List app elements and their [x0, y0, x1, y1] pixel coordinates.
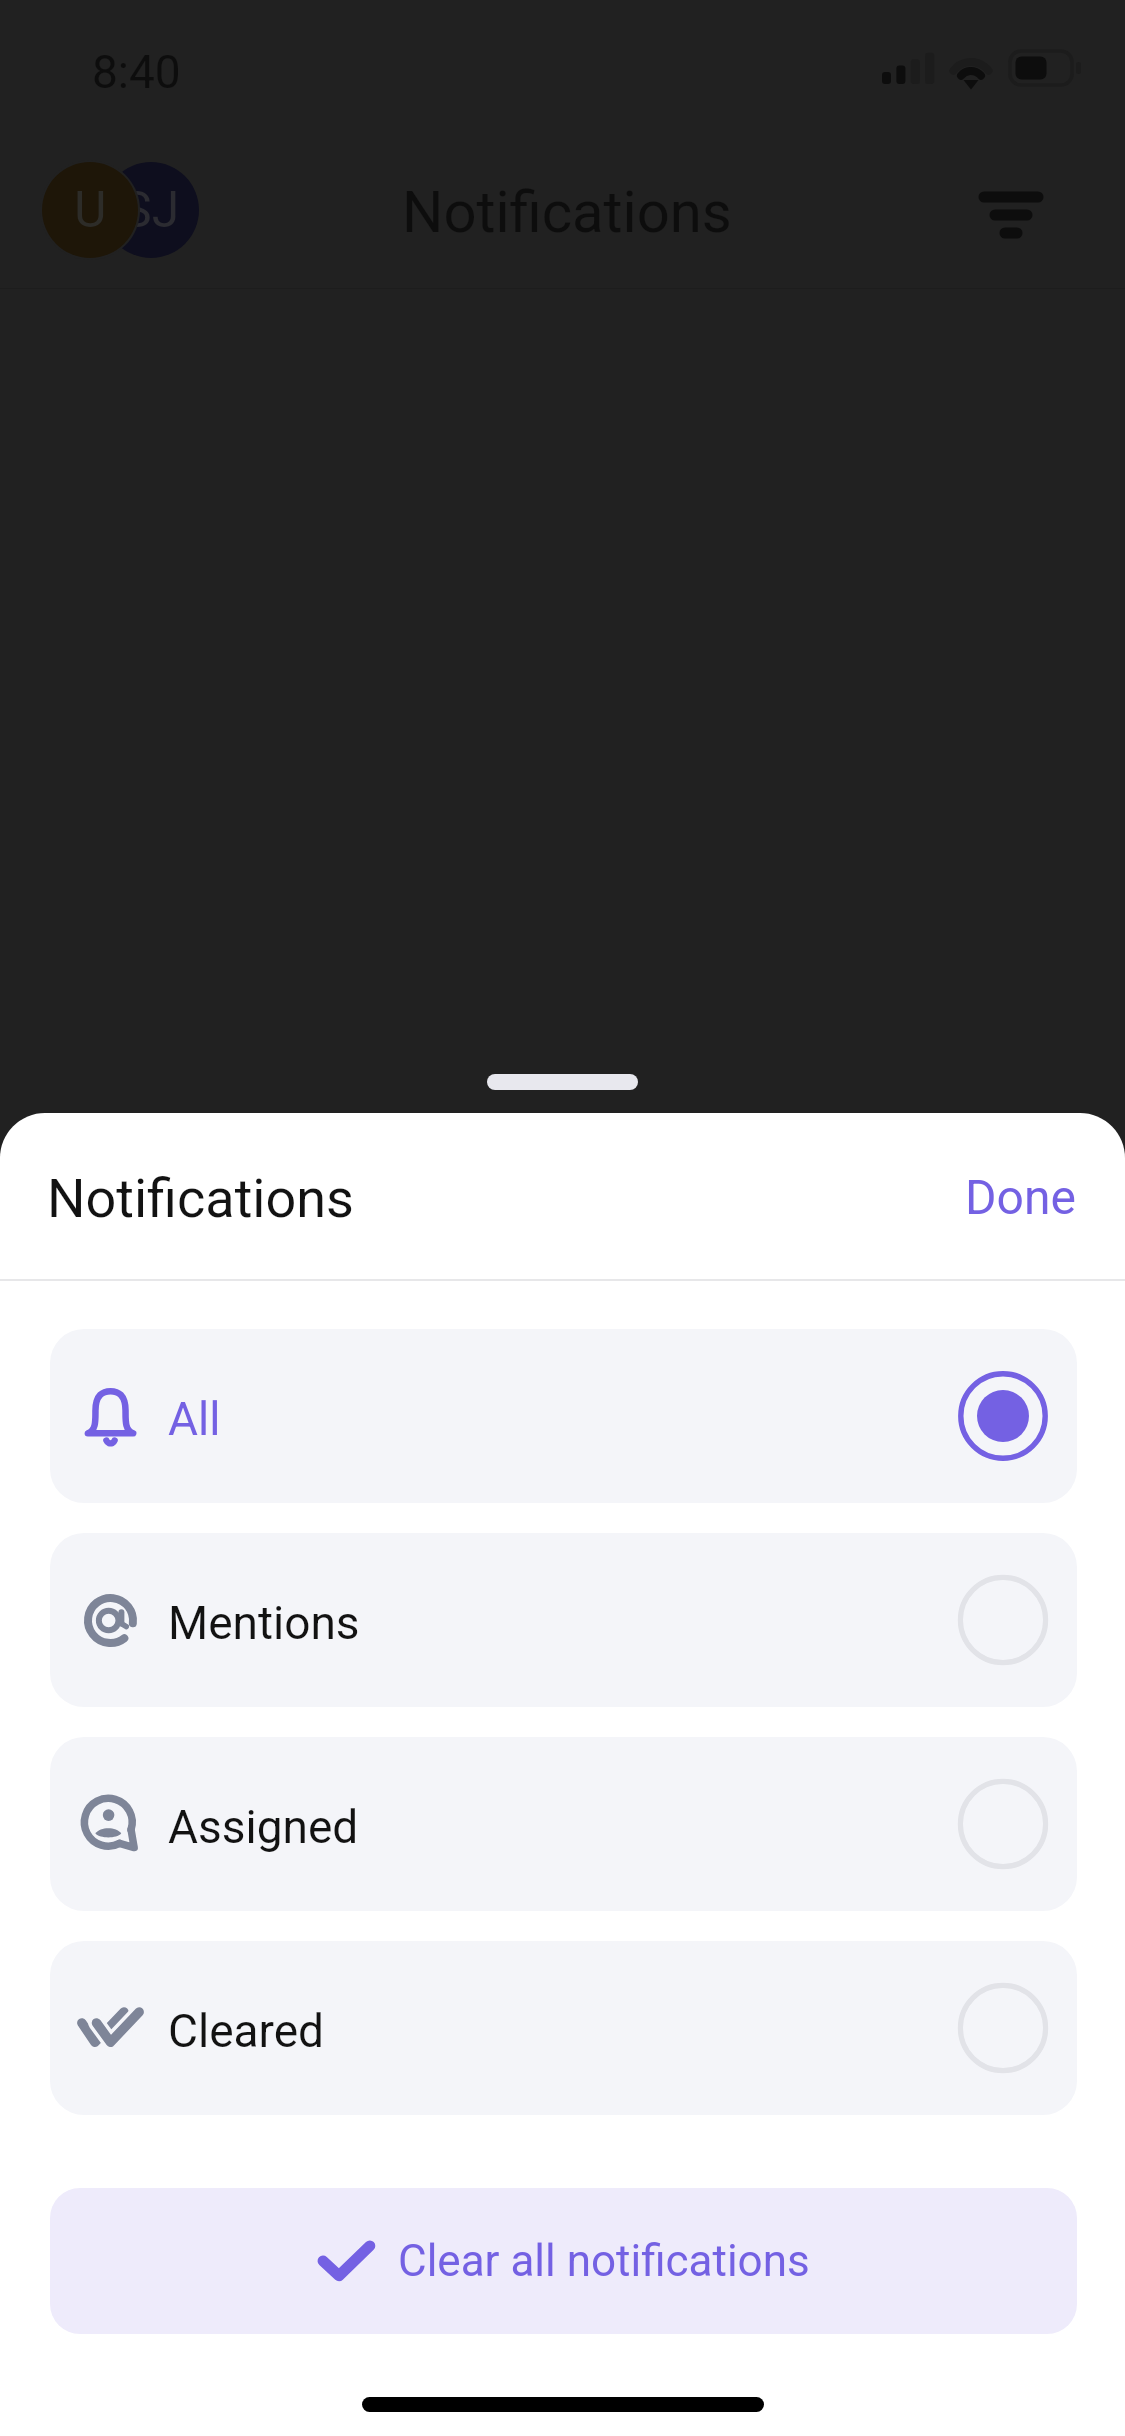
staticText: U — [74, 181, 107, 240]
button[interactable]: Clear all notifications — [50, 2188, 1077, 2334]
staticText: 8:40 — [92, 45, 181, 99]
staticText: Assigned — [168, 1800, 359, 1854]
button[interactable]: Done — [930, 1141, 1110, 1253]
button[interactable]: All — [50, 1329, 1077, 1503]
button[interactable]: Mentions — [50, 1533, 1077, 1707]
staticText: Notifications — [47, 1167, 354, 1230]
staticText: All — [168, 1392, 221, 1446]
staticText: Notifications — [402, 178, 732, 246]
button[interactable]: Filter — [966, 165, 1056, 255]
staticText: Clear all notifications — [398, 2235, 810, 2287]
button[interactable]: Account — [38, 158, 203, 262]
staticText: Cleared — [168, 2004, 325, 2058]
button[interactable]: Assigned — [50, 1737, 1077, 1911]
button[interactable]: Cleared — [50, 1941, 1077, 2115]
staticText: Mentions — [168, 1596, 360, 1650]
staticText: SJ — [122, 181, 180, 240]
staticText: Done — [965, 1169, 1076, 1225]
